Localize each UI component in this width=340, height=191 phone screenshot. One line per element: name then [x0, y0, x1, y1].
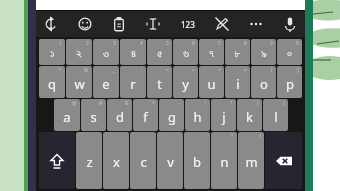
button[interactable]: Backspace: [265, 132, 302, 189]
button[interactable]: /: [238, 132, 264, 189]
staticText: 7: [218, 40, 221, 47]
button[interactable]: &: [107, 99, 132, 131]
button[interactable]: Emoji: [74, 13, 96, 35]
button[interactable]: -: [159, 99, 184, 131]
button[interactable]: ): [263, 99, 288, 131]
staticText: _: [113, 67, 116, 74]
button[interactable]: _: [93, 66, 119, 98]
staticText: !: [205, 100, 207, 107]
staticText: ৫: [157, 48, 163, 59]
button[interactable]: 1: [39, 39, 65, 65]
staticText: i: [236, 75, 240, 93]
button[interactable]: :: [120, 66, 146, 98]
button[interactable]: ৎ: [39, 66, 65, 98]
button[interactable]: 7: [199, 39, 224, 65]
button[interactable]: +: [199, 66, 224, 98]
staticText: (: [257, 100, 259, 107]
staticText: +: [218, 67, 221, 74]
button[interactable]: @: [54, 99, 80, 131]
staticText: ]: [297, 67, 299, 74]
button[interactable]: c: [130, 132, 156, 189]
staticText: ১: [50, 48, 55, 59]
staticText: 0: [296, 40, 299, 47]
button[interactable]: [: [251, 66, 276, 98]
button[interactable]: 9: [251, 39, 276, 65]
button[interactable]: More options: [245, 13, 267, 35]
staticText: 8: [244, 40, 247, 47]
staticText: f: [143, 108, 148, 126]
staticText: 3: [113, 40, 116, 47]
button[interactable]: ': [184, 132, 210, 189]
button[interactable]: 5: [147, 39, 172, 65]
staticText: >: [192, 67, 195, 74]
staticText: t: [157, 75, 162, 93]
button[interactable]: =: [225, 66, 250, 98]
button[interactable]: 3: [93, 39, 119, 65]
staticText: p: [286, 75, 294, 93]
button[interactable]: <: [147, 66, 172, 98]
button[interactable]: x: [103, 132, 129, 189]
button[interactable]: Clipboard: [108, 13, 130, 35]
button[interactable]: #: [81, 99, 106, 131]
staticText: *: [152, 100, 155, 107]
staticText: :: [141, 67, 143, 74]
staticText: &: [125, 100, 129, 107]
button[interactable]: 8: [225, 39, 250, 65]
button[interactable]: Handwriting off: [211, 13, 233, 35]
staticText: ৪: [131, 48, 136, 59]
staticText: =: [244, 67, 247, 74]
button[interactable]: Text editing: [142, 13, 164, 35]
button[interactable]: z: [76, 132, 102, 189]
button[interactable]: 0: [277, 39, 302, 65]
staticText: <: [166, 67, 169, 74]
button[interactable]: ?: [211, 99, 236, 131]
button[interactable]: ": [211, 132, 237, 189]
staticText: e: [102, 75, 110, 93]
staticText: j: [222, 108, 226, 126]
button[interactable]: Numbers: [177, 13, 199, 35]
staticText: 5: [166, 40, 169, 47]
button[interactable]: 4: [120, 39, 146, 65]
button[interactable]: 2: [66, 39, 92, 65]
staticText: ৩: [103, 48, 109, 59]
staticText: 6: [192, 40, 195, 47]
staticText: m: [245, 153, 258, 171]
staticText: y: [182, 75, 189, 93]
staticText: h: [193, 108, 202, 126]
staticText: x: [113, 153, 120, 171]
staticText: q: [48, 75, 56, 93]
button[interactable]: ]: [277, 66, 302, 98]
staticText: ৎ: [59, 67, 62, 72]
button[interactable]: Voice input: [279, 13, 301, 35]
staticText: ): [283, 100, 285, 107]
staticText: ': [205, 133, 207, 140]
button[interactable]: Switch language: [40, 13, 62, 35]
staticText: u: [207, 75, 216, 93]
staticText: k: [246, 108, 253, 126]
staticText: z: [86, 153, 93, 171]
button[interactable]: 6: [173, 39, 198, 65]
button[interactable]: !: [185, 99, 210, 131]
staticText: b: [193, 153, 201, 171]
staticText: n: [220, 153, 229, 171]
button[interactable]: (: [237, 99, 262, 131]
staticText: 2: [86, 40, 89, 47]
staticText: c: [140, 153, 147, 171]
staticText: ৭: [209, 48, 214, 59]
button[interactable]: >: [173, 66, 198, 98]
staticText: g: [168, 108, 176, 126]
staticText: r: [130, 75, 136, 93]
staticText: [: [271, 67, 273, 74]
staticText: /: [259, 133, 261, 140]
button[interactable]: %: [66, 66, 92, 98]
staticText: ৮: [234, 48, 241, 59]
staticText: ৯: [261, 48, 267, 59]
button[interactable]: *: [133, 99, 158, 131]
button[interactable]: v: [157, 132, 183, 189]
staticText: 9: [270, 40, 273, 47]
staticText: w: [74, 75, 85, 93]
staticText: 4: [140, 40, 143, 47]
staticText: ?: [230, 100, 233, 107]
staticText: o: [260, 75, 268, 93]
button[interactable]: Shift: [39, 132, 75, 189]
